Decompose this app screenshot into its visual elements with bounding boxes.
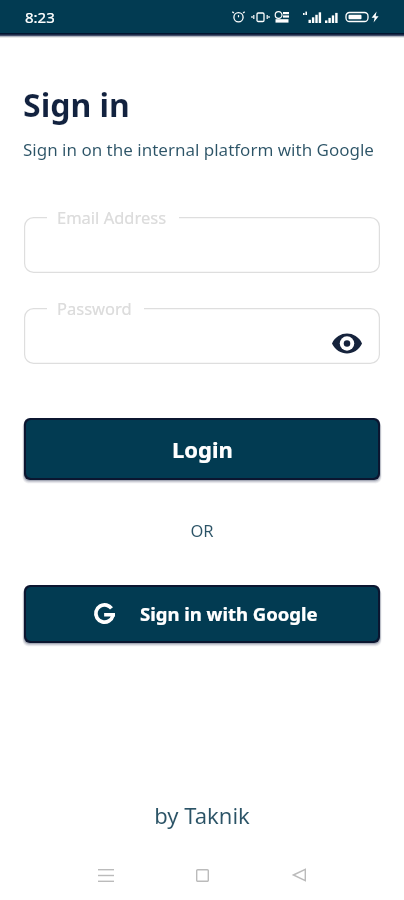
staticText: Login xyxy=(172,434,233,464)
button[interactable]: Sign in with Google xyxy=(26,587,378,641)
staticText: OR xyxy=(0,519,404,541)
staticText: 8:23 xyxy=(25,7,55,27)
button[interactable]: Home xyxy=(178,851,226,899)
staticText: Email Address xyxy=(57,206,167,228)
button[interactable]: Login xyxy=(26,420,378,478)
button[interactable] xyxy=(24,217,380,273)
staticText: by Taknik xyxy=(0,800,404,830)
staticText: Sign in xyxy=(23,83,130,127)
staticText: Sign in with Google xyxy=(140,601,318,626)
staticText: Password xyxy=(57,297,132,319)
button[interactable] xyxy=(24,308,380,364)
button[interactable]: Show password xyxy=(325,321,369,365)
button[interactable]: Recent apps xyxy=(82,851,130,899)
staticText: Sign in on the internal platform with Go… xyxy=(23,138,374,161)
button[interactable]: Back xyxy=(275,851,323,899)
